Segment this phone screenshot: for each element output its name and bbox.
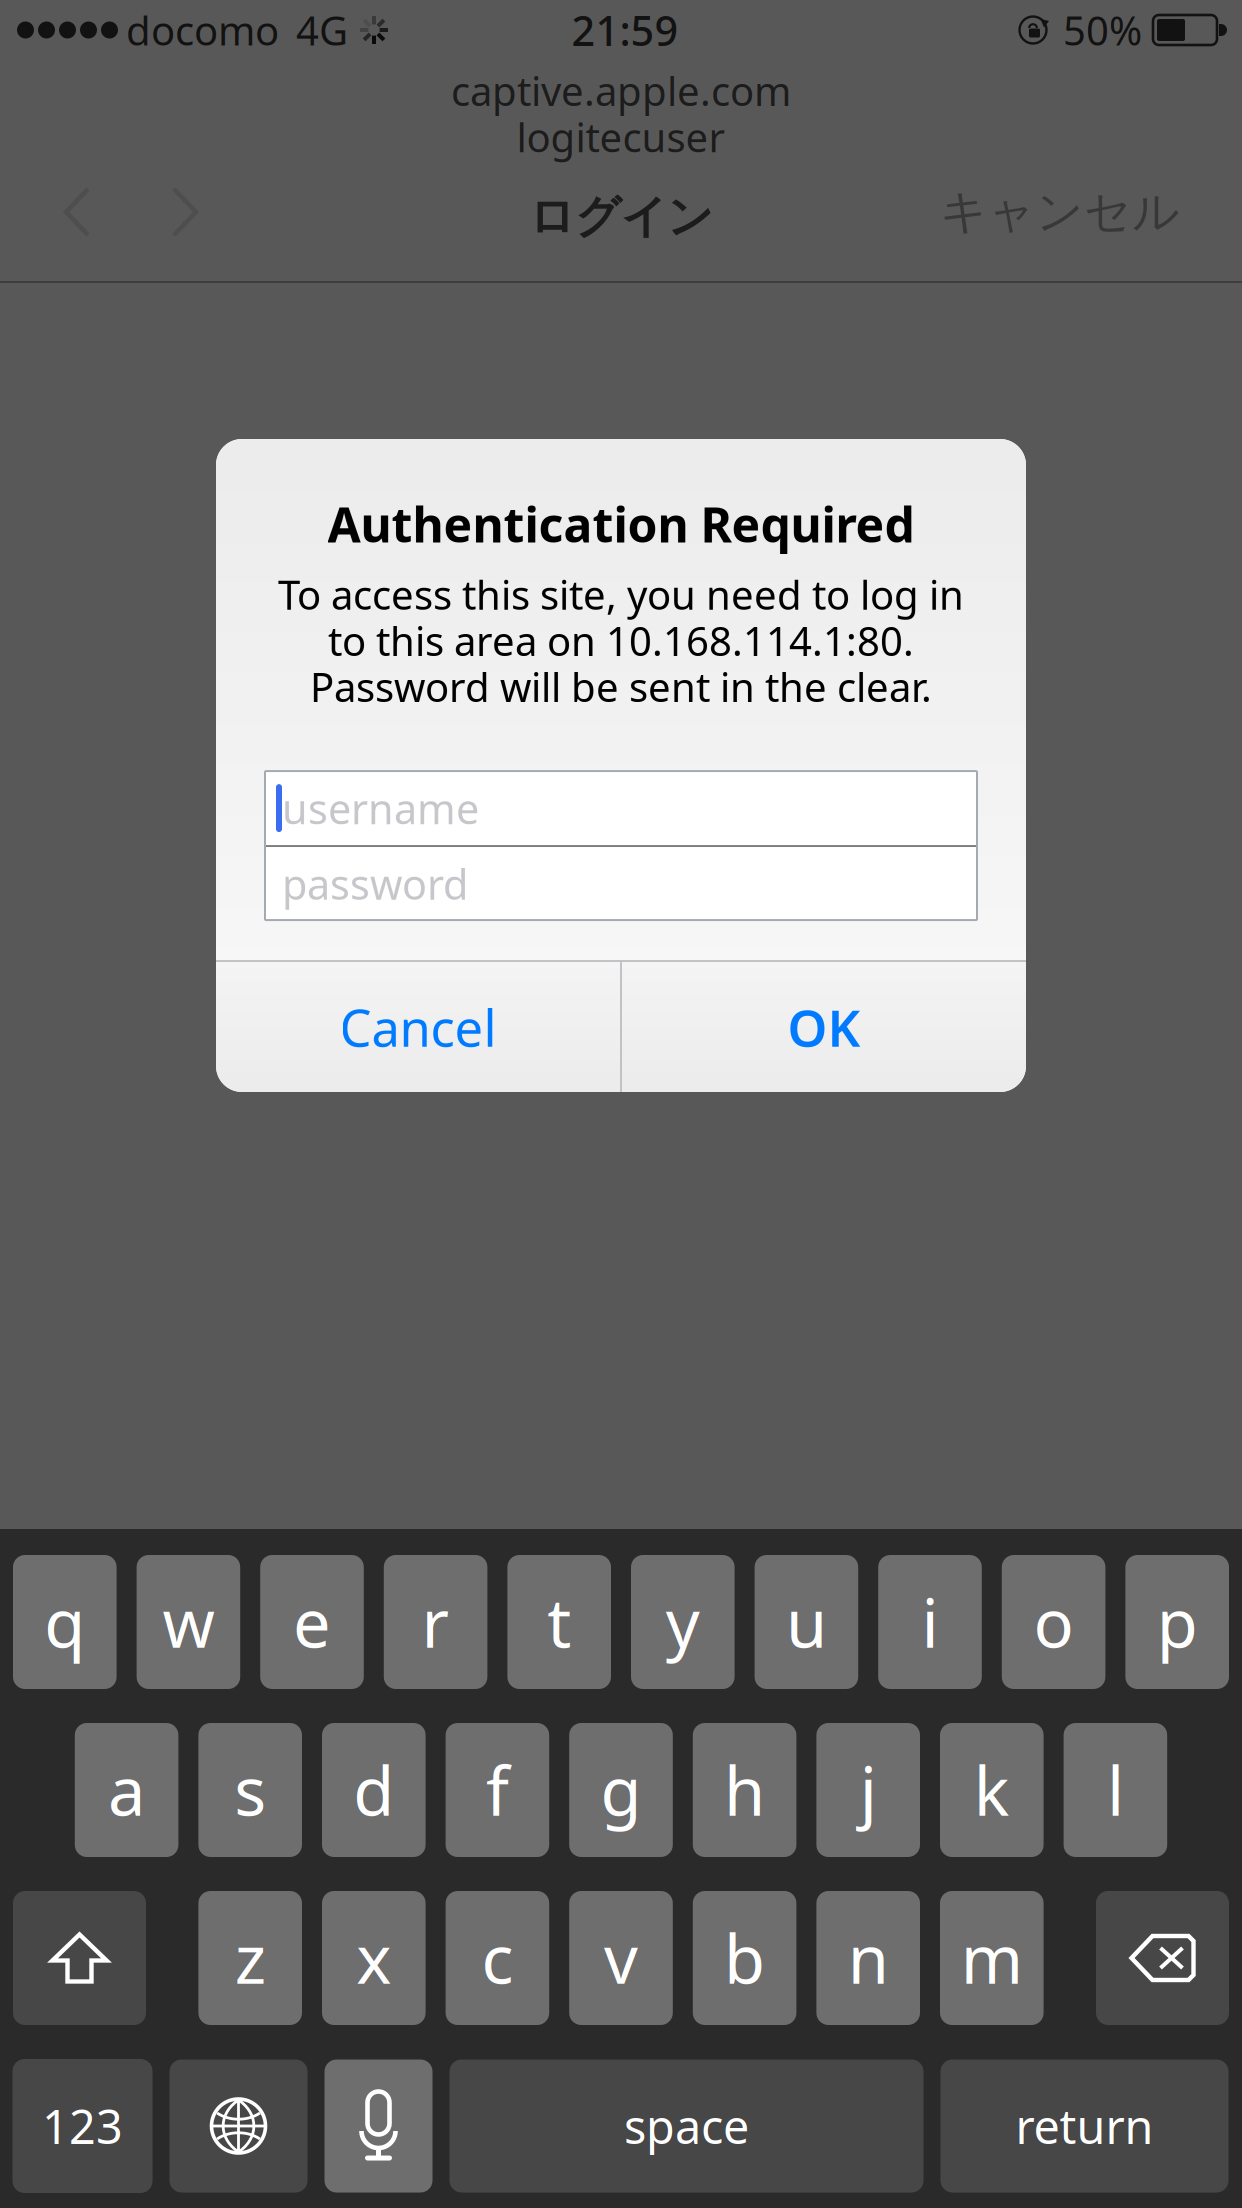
staticText: f — [486, 1746, 509, 1834]
staticText: y — [666, 1578, 700, 1666]
staticText: a — [108, 1746, 145, 1834]
button[interactable]: g — [569, 1723, 673, 1857]
staticText: j — [860, 1746, 877, 1834]
button[interactable]: e — [260, 1555, 364, 1689]
staticText: 123 — [42, 2095, 123, 2157]
staticText: username — [282, 781, 479, 836]
staticText: t — [547, 1578, 571, 1666]
staticText: 4G — [296, 3, 348, 56]
button[interactable]: s — [198, 1723, 302, 1857]
button[interactable]: v — [569, 1891, 673, 2025]
button[interactable]: w — [137, 1555, 240, 1689]
staticText: 50% — [1063, 3, 1142, 56]
staticText: docomo — [126, 3, 279, 56]
staticText: password — [282, 856, 468, 911]
staticText: x — [356, 1914, 391, 2002]
staticText: c — [481, 1914, 513, 2002]
staticText: to this area on 10.168.114.1:80. — [328, 614, 914, 667]
staticText: i — [921, 1578, 938, 1666]
button[interactable]: Shift — [13, 1891, 146, 2025]
staticText: b — [724, 1914, 765, 2002]
button[interactable]: x — [322, 1891, 426, 2025]
button[interactable]: a — [75, 1723, 178, 1857]
button[interactable]: o — [1002, 1555, 1105, 1689]
button[interactable]: h — [693, 1723, 796, 1857]
button[interactable]: z — [198, 1891, 302, 2025]
button[interactable]: space — [449, 2059, 923, 2192]
button[interactable]: 123 — [12, 2059, 152, 2193]
staticText: OK — [787, 993, 860, 1061]
staticText: o — [1034, 1578, 1074, 1666]
button[interactable]: キャンセル — [940, 172, 1180, 252]
staticText: Cancel — [339, 993, 496, 1061]
staticText: p — [1157, 1578, 1198, 1666]
button[interactable]: return — [940, 2059, 1228, 2192]
staticText: Authentication Required — [327, 492, 914, 556]
button[interactable]: m — [940, 1891, 1044, 2025]
button[interactable]: Cancel — [216, 962, 620, 1092]
staticText: z — [235, 1914, 266, 2002]
staticText: To access this site, you need to log in — [278, 568, 964, 621]
staticText: d — [353, 1746, 394, 1834]
button[interactable]: b — [693, 1891, 796, 2025]
button[interactable]: n — [816, 1891, 920, 2025]
staticText: k — [974, 1746, 1010, 1834]
staticText: r — [422, 1578, 450, 1666]
staticText: Password will be sent in the clear. — [310, 660, 932, 713]
staticText: space — [624, 2095, 749, 2157]
button[interactable]: r — [384, 1555, 487, 1689]
staticText: return — [1015, 2095, 1153, 2157]
staticText: u — [786, 1578, 827, 1666]
staticText: l — [1107, 1746, 1124, 1834]
button[interactable]: k — [940, 1723, 1044, 1857]
button[interactable]: OK — [622, 962, 1026, 1092]
button[interactable]: d — [322, 1723, 426, 1857]
staticText: q — [44, 1578, 85, 1666]
staticText: v — [604, 1914, 638, 2002]
staticText: h — [724, 1746, 765, 1834]
button[interactable]: Next keyboard — [169, 2059, 307, 2192]
button[interactable]: j — [816, 1723, 920, 1857]
button[interactable]: u — [755, 1555, 858, 1689]
staticText: m — [961, 1914, 1023, 2002]
button[interactable]: Delete — [1096, 1891, 1229, 2025]
button[interactable]: l — [1064, 1723, 1167, 1857]
staticText: キャンセル — [940, 183, 1180, 241]
button[interactable]: f — [446, 1723, 549, 1857]
staticText: 21:59 — [571, 3, 678, 57]
staticText: w — [162, 1578, 214, 1666]
staticText: logitecuser — [516, 110, 725, 163]
button[interactable]: t — [507, 1555, 611, 1689]
staticText: captive.apple.com — [451, 64, 791, 117]
button[interactable]: y — [631, 1555, 735, 1689]
staticText: n — [848, 1914, 889, 2002]
button[interactable]: Dictation — [324, 2059, 432, 2192]
button[interactable]: i — [878, 1555, 982, 1689]
staticText: ログイン — [529, 189, 713, 245]
button[interactable]: q — [13, 1555, 117, 1689]
button[interactable]: p — [1125, 1555, 1229, 1689]
staticText: e — [293, 1578, 331, 1666]
staticText: s — [234, 1746, 266, 1834]
button[interactable]: c — [446, 1891, 549, 2025]
staticText: g — [600, 1746, 641, 1834]
